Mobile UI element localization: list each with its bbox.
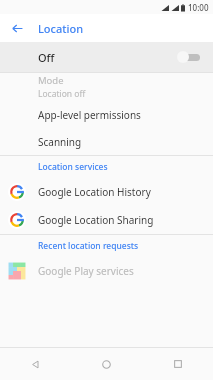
button[interactable]: Home [71, 348, 142, 380]
button[interactable]: Google Play services [0, 257, 213, 285]
button[interactable]: Back [0, 348, 71, 380]
button[interactable]: Scanning [0, 128, 213, 155]
staticText: Google Location History [38, 185, 151, 199]
staticText: Off [38, 50, 55, 65]
staticText: Google Location Sharing [38, 213, 154, 227]
button[interactable]: Mode [0, 73, 213, 101]
button[interactable]: Off [0, 42, 213, 72]
button[interactable]: Back [6, 17, 28, 39]
button[interactable]: Google Location History [0, 178, 213, 206]
staticText: Google Play services [38, 264, 134, 278]
staticText: Scanning [38, 135, 82, 149]
staticText: Mode [38, 74, 64, 87]
staticText: Location [38, 21, 84, 36]
staticText: Location services [38, 161, 108, 173]
button[interactable]: Recent apps [142, 348, 213, 380]
staticText: 10:00 [188, 2, 209, 13]
staticText: Recent location requests [38, 240, 139, 252]
staticText: App-level permissions [38, 108, 141, 122]
staticText: Location off [38, 88, 86, 100]
button[interactable]: App-level permissions [0, 101, 213, 128]
button[interactable]: Google Location Sharing [0, 206, 213, 234]
